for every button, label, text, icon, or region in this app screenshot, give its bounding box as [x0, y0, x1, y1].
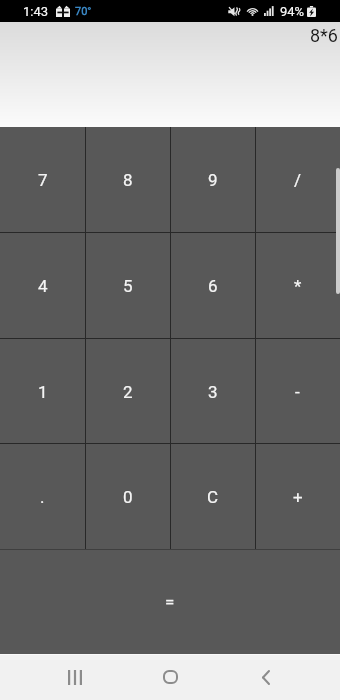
- staticText: 0: [123, 487, 133, 507]
- button[interactable]: 9: [170, 127, 255, 233]
- staticText: *: [294, 276, 302, 296]
- staticText: +: [293, 487, 303, 507]
- button[interactable]: Recent apps: [45, 654, 105, 700]
- staticText: -: [295, 382, 300, 402]
- button[interactable]: 6: [170, 233, 255, 339]
- staticText: 5: [123, 276, 133, 296]
- staticText: 8*6: [310, 25, 338, 46]
- staticText: C: [207, 487, 219, 507]
- staticText: =: [165, 592, 175, 612]
- staticText: 2: [123, 382, 133, 402]
- button[interactable]: +: [255, 444, 340, 549]
- button[interactable]: 1: [0, 339, 85, 444]
- button[interactable]: 5: [85, 233, 170, 339]
- staticText: 6: [208, 276, 218, 296]
- staticText: 9: [208, 170, 218, 190]
- button[interactable]: =: [0, 549, 340, 654]
- button[interactable]: /: [255, 127, 340, 233]
- button[interactable]: 2: [85, 339, 170, 444]
- staticText: 3: [208, 382, 218, 402]
- staticText: 94%: [280, 4, 305, 19]
- staticText: 1: [38, 382, 48, 402]
- button[interactable]: 7: [0, 127, 85, 233]
- staticText: 70°: [75, 5, 92, 18]
- staticText: 7: [38, 170, 48, 190]
- button[interactable]: -: [255, 339, 340, 444]
- button[interactable]: Home: [140, 654, 200, 700]
- staticText: 4: [38, 276, 48, 296]
- button[interactable]: 3: [170, 339, 255, 444]
- staticText: 1:43: [23, 4, 49, 19]
- staticText: 8: [123, 170, 133, 190]
- button[interactable]: 4: [0, 233, 85, 339]
- button[interactable]: C: [170, 444, 255, 549]
- button[interactable]: *: [255, 233, 340, 339]
- button[interactable]: Back: [236, 654, 296, 700]
- staticText: /: [294, 170, 302, 190]
- button[interactable]: 0: [85, 444, 170, 549]
- staticText: .: [40, 487, 45, 507]
- button[interactable]: 8: [85, 127, 170, 233]
